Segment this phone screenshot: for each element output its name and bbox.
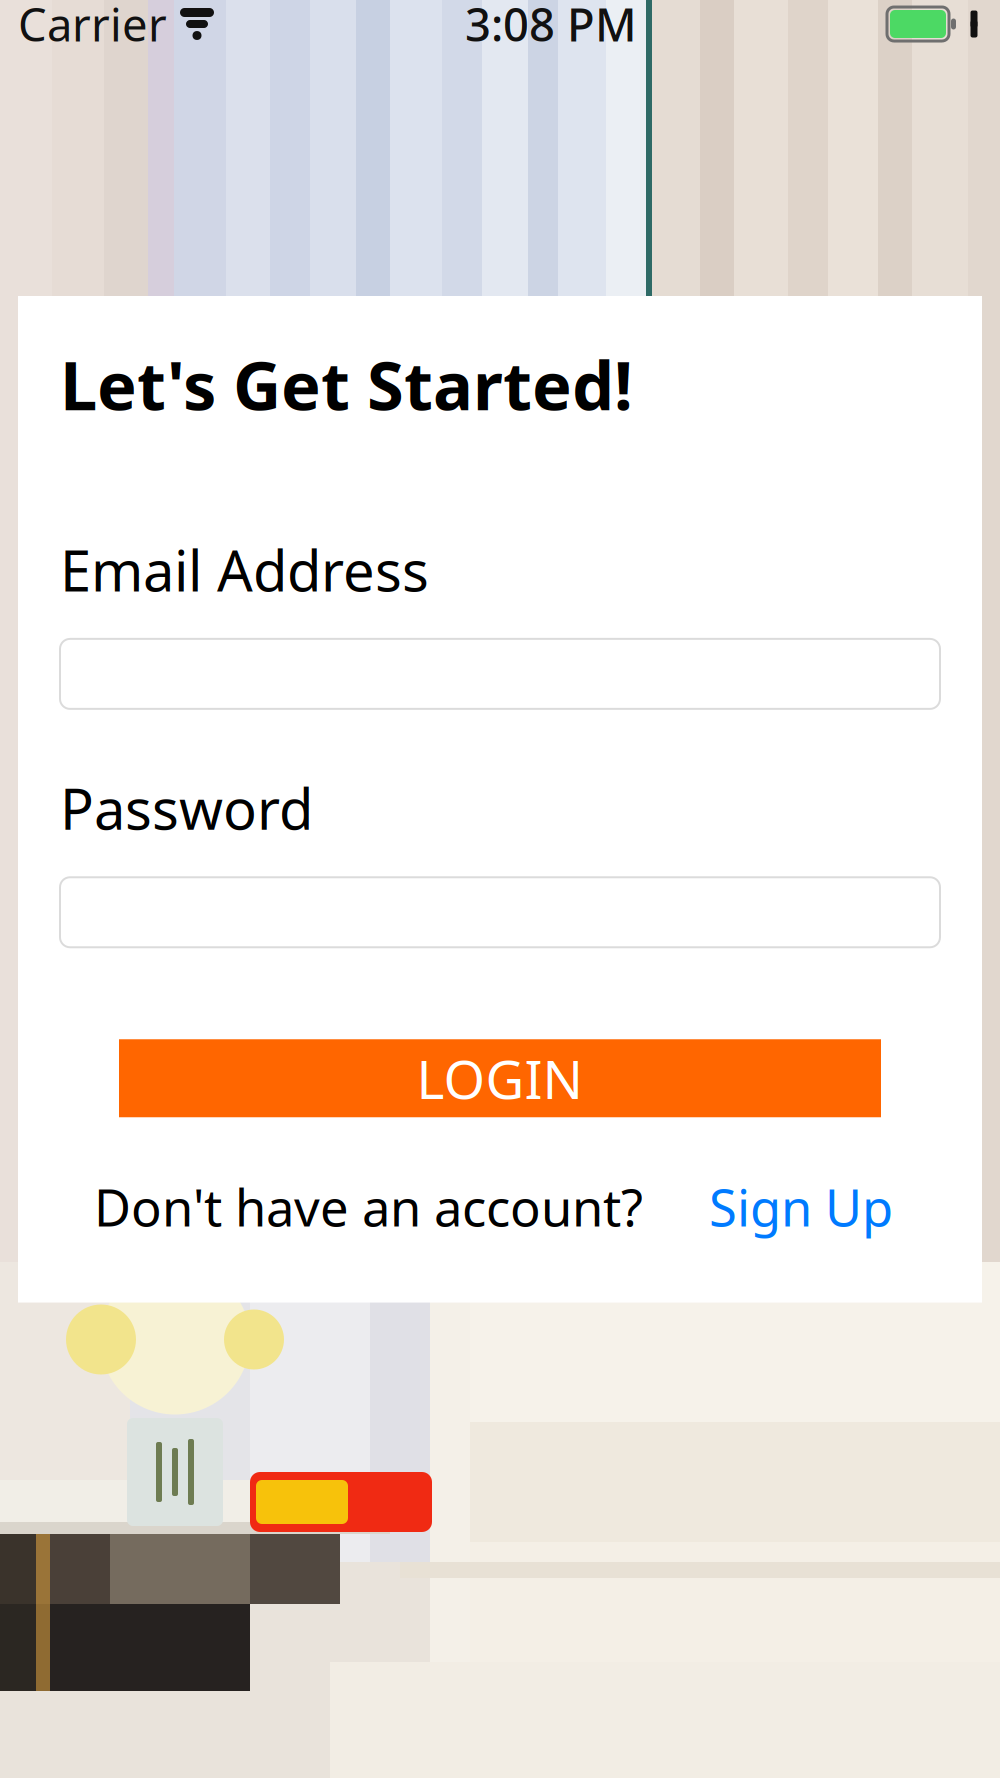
staticText: Email Address <box>60 532 429 607</box>
button[interactable]: Sign Up <box>709 1173 893 1241</box>
staticText: Don't have an account? <box>94 1173 643 1241</box>
button[interactable]: Password <box>60 877 940 947</box>
button[interactable]: LOGIN <box>119 1039 881 1117</box>
staticText: 3:08 PM <box>465 0 637 54</box>
staticText: Let's Get Started! <box>60 340 633 428</box>
staticText: Password <box>60 771 313 845</box>
staticText: LOGIN <box>416 1043 583 1114</box>
button[interactable]: Email Address <box>60 639 940 709</box>
staticText: Carrier <box>18 0 167 54</box>
staticText: Sign Up <box>709 1173 893 1241</box>
